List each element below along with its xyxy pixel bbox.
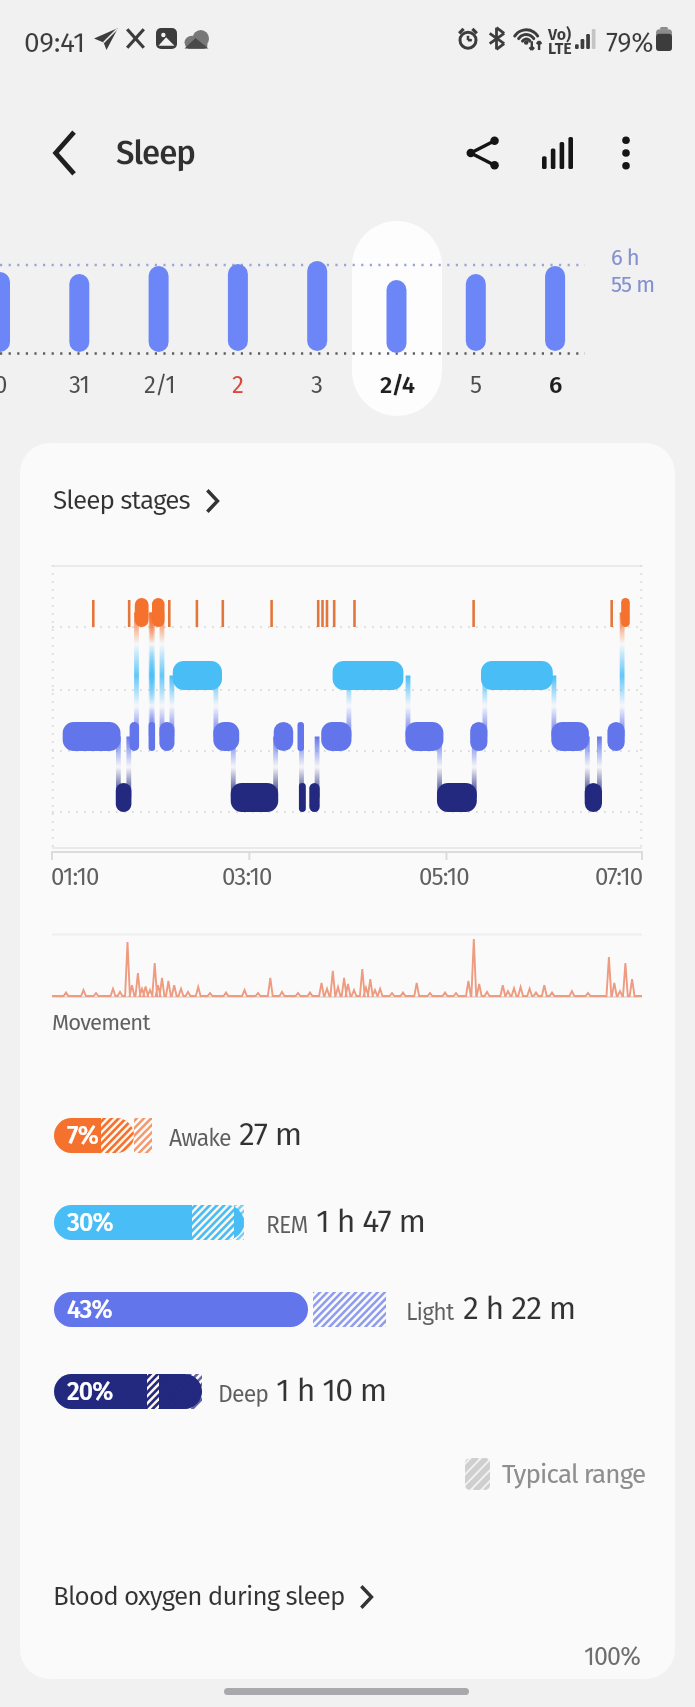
staticText: REM (266, 1211, 308, 1239)
staticText: 6 (549, 371, 562, 400)
button[interactable]: 20% (54, 1374, 206, 1409)
button[interactable]: 43% (54, 1292, 390, 1327)
button[interactable]: Chart view (530, 125, 586, 181)
button[interactable] (352, 221, 442, 416)
button[interactable]: 31 (40, 362, 118, 408)
staticText: 5 (470, 371, 482, 400)
staticText: Sleep (116, 133, 195, 173)
staticText: 2 h 22 m (463, 1289, 576, 1327)
button[interactable]: More options (598, 125, 654, 181)
staticText: 100% (584, 1642, 640, 1672)
button[interactable]: 5 (437, 362, 515, 408)
staticText: 05:10 (419, 863, 469, 892)
button[interactable]: Sleep stages (53, 485, 219, 516)
staticText: 31 (69, 371, 90, 400)
staticText: Movement (52, 1009, 150, 1035)
button[interactable]: 2 (199, 362, 277, 408)
staticText: 3 (311, 371, 323, 400)
button[interactable]: 30% (54, 1205, 248, 1240)
staticText: 30% (67, 1208, 113, 1238)
other: Back (40, 125, 96, 181)
button[interactable]: Back (40, 125, 195, 181)
staticText: 09:41 (24, 26, 86, 60)
staticText: 20% (67, 1377, 113, 1407)
staticText: Blood oxygen during sleep (53, 1581, 345, 1612)
staticText: Typical range (502, 1459, 646, 1490)
staticText: 43% (67, 1295, 112, 1325)
button[interactable]: 3 (278, 362, 356, 408)
staticText: 0 (0, 371, 7, 400)
button[interactable]: 2/1 (120, 362, 198, 408)
staticText: 2/4 (380, 371, 415, 400)
staticText: Light (406, 1298, 454, 1326)
button[interactable]: 7% (54, 1118, 156, 1153)
button[interactable]: Share (455, 125, 511, 181)
staticText: 01:10 (51, 863, 99, 892)
staticText: 7% (67, 1121, 99, 1151)
button[interactable]: 0 (0, 362, 39, 408)
button[interactable]: 2/4 (358, 362, 436, 408)
staticText: 2 (232, 371, 244, 400)
staticText: LTE (548, 39, 572, 58)
staticText: Deep (218, 1380, 269, 1408)
staticText: 79% (606, 27, 654, 59)
button[interactable]: Blood oxygen during sleep (53, 1581, 373, 1612)
staticText: 55 m (611, 271, 655, 297)
staticText: Awake (169, 1124, 231, 1152)
staticText: 27 m (239, 1115, 302, 1153)
staticText: 1 h 10 m (276, 1371, 387, 1409)
staticText: 03:10 (222, 863, 272, 892)
staticText: Vo) (548, 25, 572, 44)
button[interactable]: 6 (516, 362, 594, 408)
staticText: 1 h 47 m (316, 1202, 426, 1240)
staticText: 07:10 (595, 863, 643, 892)
staticText: 2/1 (144, 371, 175, 400)
staticText: Sleep stages (53, 485, 190, 516)
staticText: 6 h (611, 244, 639, 270)
